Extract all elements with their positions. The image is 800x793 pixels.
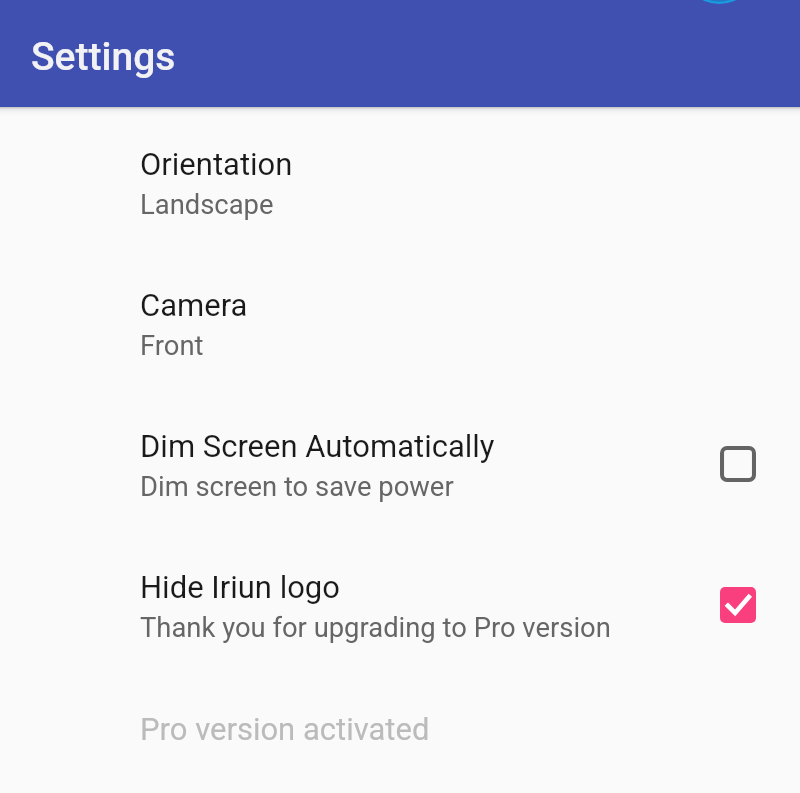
staticText: Thank you for upgrading to Pro version <box>140 612 611 644</box>
staticText: Pro version activated <box>140 711 430 747</box>
button[interactable]: Dim Screen Automatically <box>0 428 800 569</box>
button[interactable]: Hide Iriun logo <box>0 569 800 710</box>
staticText: Camera <box>140 287 248 323</box>
button[interactable]: Enabled checkbox: Hide Iriun logo <box>720 587 756 623</box>
staticText: Dim Screen Automatically <box>140 428 495 464</box>
staticText: Landscape <box>140 189 274 221</box>
staticText: Dim screen to save power <box>140 471 454 503</box>
staticText: Hide Iriun logo <box>140 569 340 605</box>
button[interactable]: Camera <box>0 287 800 428</box>
button[interactable]: Disabled checkbox: Dim Screen Automatica… <box>720 446 756 482</box>
button[interactable]: Orientation <box>0 146 800 287</box>
staticText: Orientation <box>140 146 293 182</box>
other: Floating webcam bubble <box>684 0 756 8</box>
staticText: Settings <box>31 34 176 80</box>
staticText: Front <box>140 330 204 362</box>
